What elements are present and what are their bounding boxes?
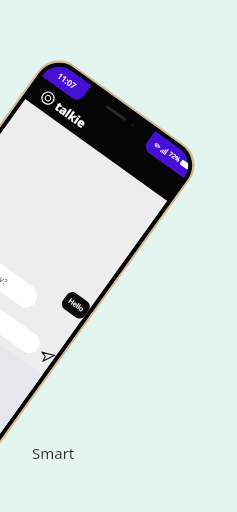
staticText: How are you today? — [0, 234, 10, 287]
staticText: Smart — [32, 443, 75, 463]
staticText: talkie — [52, 98, 90, 131]
staticText: Hello — [66, 296, 86, 314]
staticText: 72% — [167, 150, 182, 164]
staticText: 11:07 — [56, 70, 79, 91]
